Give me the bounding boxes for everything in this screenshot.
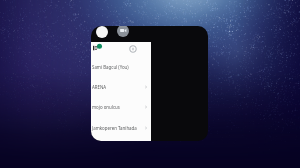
button[interactable]: Info [129, 45, 137, 53]
staticText: mojo onulcus [92, 104, 144, 110]
button[interactable]: mojo onulcus [91, 97, 151, 116]
staticText: ARENA [92, 84, 144, 90]
staticText: Sami Bagcul (You) [92, 64, 148, 70]
button[interactable]: Jamkoperen Tanihada [91, 118, 151, 137]
button[interactable]: ARENA [91, 77, 151, 96]
button[interactable]: Camera [117, 26, 129, 37]
staticText: Jamkoperen Tanihada [92, 125, 144, 131]
button[interactable]: Sami Bagcul (You) [91, 57, 151, 76]
